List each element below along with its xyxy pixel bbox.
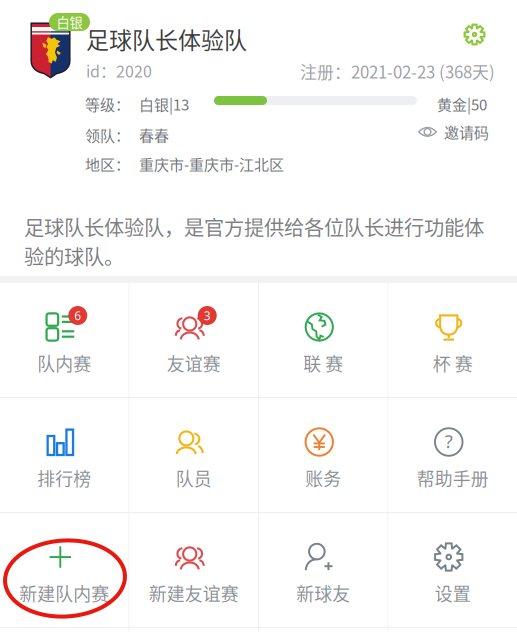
staticText: 联 赛	[303, 350, 343, 376]
button[interactable]: 排行榜	[0, 398, 128, 512]
button[interactable]: ?	[388, 398, 517, 512]
button[interactable]: 新建队内赛	[0, 513, 128, 627]
staticText: 账务	[305, 465, 341, 491]
staticText: 地区：	[85, 153, 130, 175]
staticText: 重庆市-重庆市-江北区	[139, 153, 284, 175]
staticText: 黄金|50	[437, 93, 487, 115]
staticText: 排行榜	[37, 465, 91, 491]
staticText: 春春	[139, 124, 169, 146]
staticText: 帮助手册	[417, 465, 489, 491]
staticText: 杯 赛	[433, 350, 473, 376]
staticText: 队员	[176, 465, 212, 491]
staticText: 新建队内赛	[19, 580, 109, 606]
button[interactable]: 杯 赛	[388, 283, 517, 397]
staticText: 队内赛	[37, 350, 91, 376]
button[interactable]: 联 赛	[259, 283, 387, 397]
staticText: 3	[204, 307, 211, 323]
staticText: 新球友	[296, 580, 350, 606]
button[interactable]: 邀请码	[418, 121, 489, 143]
button[interactable]: 账务	[259, 398, 387, 512]
staticText: 6	[74, 307, 81, 323]
staticText: 新建友谊赛	[149, 580, 239, 606]
staticText: 设置	[435, 580, 471, 606]
staticText: 足球队长体验队	[86, 22, 247, 55]
button[interactable]: 6	[0, 283, 128, 397]
button[interactable]: 新建友谊赛	[129, 513, 258, 627]
button[interactable]: 新球友	[259, 513, 387, 627]
staticText: 注册：2021-02-23 (368天)	[300, 59, 495, 83]
button[interactable]: 设置	[388, 513, 517, 627]
staticText: 足球队长体验队，是官方提供给各位队长进行功能体验的球队。	[24, 212, 484, 271]
staticText: 友谊赛	[167, 350, 221, 376]
button[interactable]: 队员	[129, 398, 258, 512]
staticText: 白银	[56, 12, 82, 32]
staticText: 邀请码	[444, 121, 489, 143]
staticText: ?	[445, 429, 453, 453]
button[interactable]: 3	[129, 283, 258, 397]
button[interactable]: 球队设置	[464, 24, 485, 45]
staticText: 等级：	[85, 93, 130, 115]
staticText: id：2020	[86, 59, 152, 82]
staticText: 白银|13	[139, 93, 189, 115]
staticText: 领队：	[85, 124, 130, 146]
